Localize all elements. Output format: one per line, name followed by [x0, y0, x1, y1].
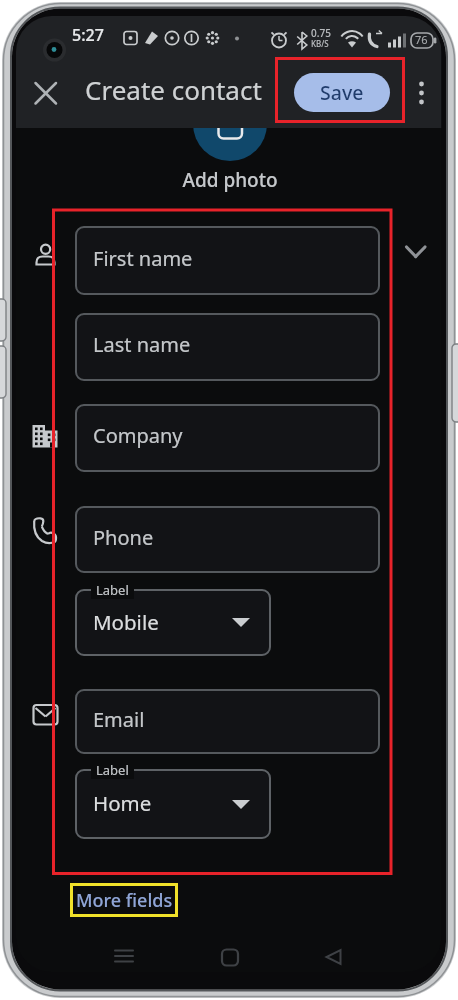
staticText: Label [96, 581, 129, 599]
button[interactable]: Save [294, 73, 390, 112]
button[interactable] [208, 938, 252, 972]
button[interactable]: Email [75, 689, 380, 754]
staticText: Last name [93, 331, 191, 358]
staticText: Label [96, 761, 129, 779]
staticText: 5:27 [72, 24, 104, 46]
staticText: Add photo [170, 167, 290, 193]
staticText: Save [320, 79, 364, 106]
staticText: Home [93, 789, 152, 817]
staticText: Phone [93, 524, 154, 551]
button[interactable]: First name [75, 226, 380, 295]
staticText: KB/S [311, 38, 329, 49]
button[interactable] [102, 938, 146, 972]
button[interactable]: Home [75, 769, 271, 839]
button[interactable]: Company [75, 404, 380, 472]
button[interactable]: Last name [75, 313, 380, 381]
button[interactable] [312, 938, 356, 972]
button[interactable] [400, 238, 432, 266]
staticText: Mobile [93, 608, 159, 636]
staticText: Company [93, 422, 183, 449]
button[interactable] [193, 87, 267, 161]
button[interactable]: Phone [75, 506, 380, 573]
staticText: More fields [76, 888, 173, 913]
button[interactable]: Mobile [75, 589, 271, 656]
button[interactable] [407, 77, 437, 109]
staticText: 76 [415, 32, 428, 47]
button[interactable]: More fields [70, 883, 178, 917]
staticText: Email [93, 706, 145, 733]
staticText: 0.75 [311, 26, 331, 40]
button[interactable] [30, 77, 62, 109]
staticText: Create contact [85, 72, 262, 107]
staticText: First name [93, 245, 193, 272]
